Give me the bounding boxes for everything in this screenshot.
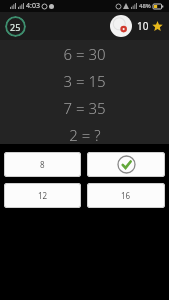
staticText: 2 = ? [69,125,101,144]
staticText: 10 [137,19,149,33]
button[interactable]: 16 [87,183,165,208]
staticText: 3 = 15 [63,71,106,91]
staticText: 48% [139,2,151,10]
staticText: 8 [40,159,45,170]
button[interactable]: Profile [110,15,132,37]
button[interactable]: 12 [4,183,81,208]
button[interactable]: 25 [5,16,26,37]
button[interactable]: Correct answer [87,152,165,177]
staticText: 16 [121,190,131,201]
staticText: 7 = 35 [63,98,106,118]
staticText: 25 [10,21,21,33]
staticText: 4:03 [26,1,40,11]
button[interactable]: 8 [4,152,81,177]
staticText: 12 [38,190,48,201]
staticText: 6 = 30 [63,44,106,64]
